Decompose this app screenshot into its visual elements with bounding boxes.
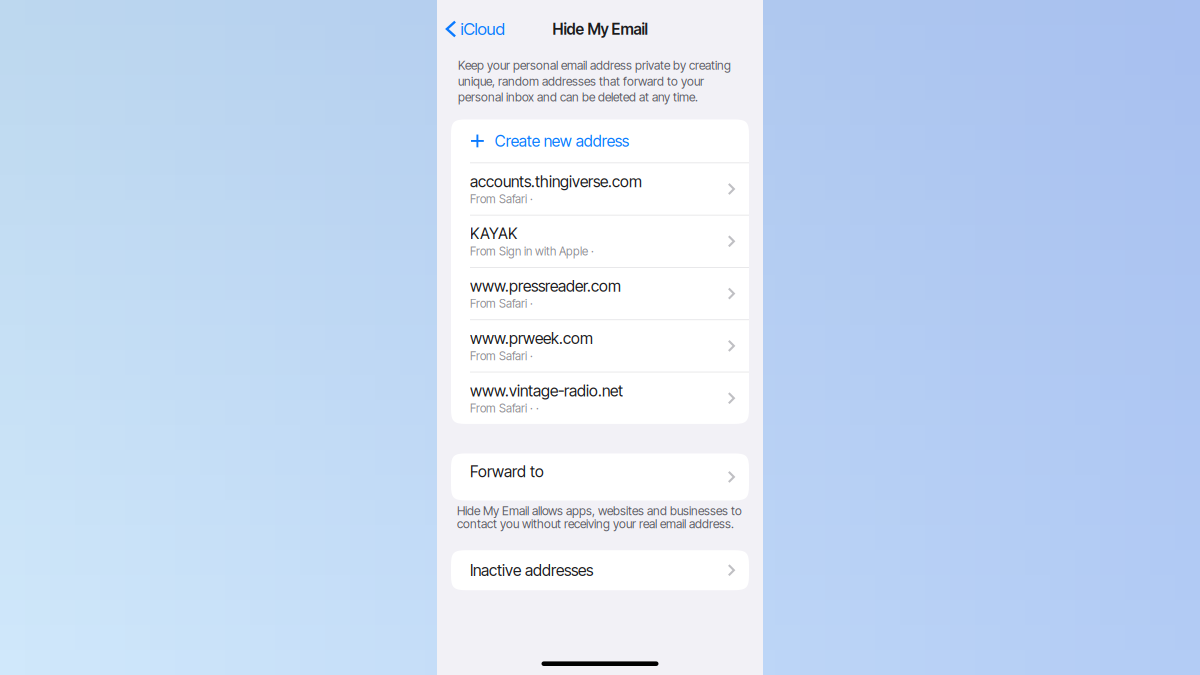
button[interactable]: Create new address (451, 119, 749, 162)
button[interactable]: accounts.thingiverse.com (451, 163, 749, 215)
staticText: www.vintage-radio.net (470, 381, 623, 400)
button[interactable]: www.pressreader.com (451, 268, 749, 319)
staticText: Inactive addresses (470, 561, 593, 580)
staticText: From Sign in with Apple · (470, 244, 594, 258)
button[interactable]: www.vintage-radio.net (451, 372, 749, 424)
staticText: www.prweek.com (470, 329, 593, 348)
staticText: Forward to (470, 462, 544, 481)
staticText: From Safari · (470, 349, 533, 363)
button[interactable]: Inactive addresses (451, 550, 749, 590)
staticText: KAYAK (470, 224, 518, 243)
staticText: Hide My Email allows apps, websites and … (457, 503, 742, 531)
button[interactable]: Forward to (451, 453, 749, 500)
button[interactable]: KAYAK (451, 215, 749, 267)
button[interactable]: iCloud (437, 10, 512, 48)
staticText: From Safari · (470, 192, 533, 206)
staticText: From Safari · · (470, 401, 539, 415)
staticText: Keep your personal email address private… (458, 58, 731, 104)
staticText: Create new address (495, 131, 629, 150)
staticText: accounts.thingiverse.com (470, 172, 642, 191)
staticText: iCloud (460, 19, 504, 39)
staticText: Hide My Email (552, 20, 647, 38)
staticText: www.pressreader.com (470, 277, 621, 296)
staticText: From Safari · (470, 297, 533, 311)
button[interactable]: www.prweek.com (451, 320, 749, 372)
